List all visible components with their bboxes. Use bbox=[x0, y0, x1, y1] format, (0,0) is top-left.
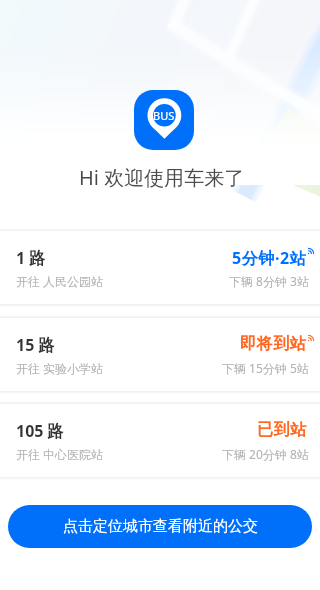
button[interactable]: 105 路 bbox=[0, 404, 320, 477]
staticText: 105 路 bbox=[16, 420, 64, 442]
staticText: 开往 中心医院站 bbox=[16, 446, 104, 462]
staticText: 点击定位城市查看附近的公交 bbox=[63, 517, 258, 536]
button[interactable]: 1 路 bbox=[0, 231, 320, 304]
other: 车来了 bbox=[134, 90, 194, 150]
staticText: 下辆 8分钟 3站 bbox=[229, 273, 309, 289]
staticText: 下辆 20分钟 8站 bbox=[222, 446, 309, 462]
staticText: Hi 欢迎使用车来了 bbox=[79, 164, 245, 191]
staticText: 1 路 bbox=[16, 247, 46, 269]
staticText: 即将到站 bbox=[240, 334, 307, 354]
button[interactable]: 15 路 bbox=[0, 318, 320, 391]
staticText: BUS bbox=[153, 108, 175, 123]
staticText: 已到站 bbox=[257, 420, 307, 440]
staticText: 15 路 bbox=[16, 334, 55, 356]
staticText: 5分钟·2站 bbox=[232, 247, 307, 269]
staticText: 下辆 15分钟 5站 bbox=[222, 360, 309, 376]
staticText: 开往 实验小学站 bbox=[16, 360, 104, 376]
staticText: 开往 人民公园站 bbox=[16, 273, 104, 289]
button[interactable]: 点击定位城市查看附近的公交 bbox=[8, 505, 312, 548]
